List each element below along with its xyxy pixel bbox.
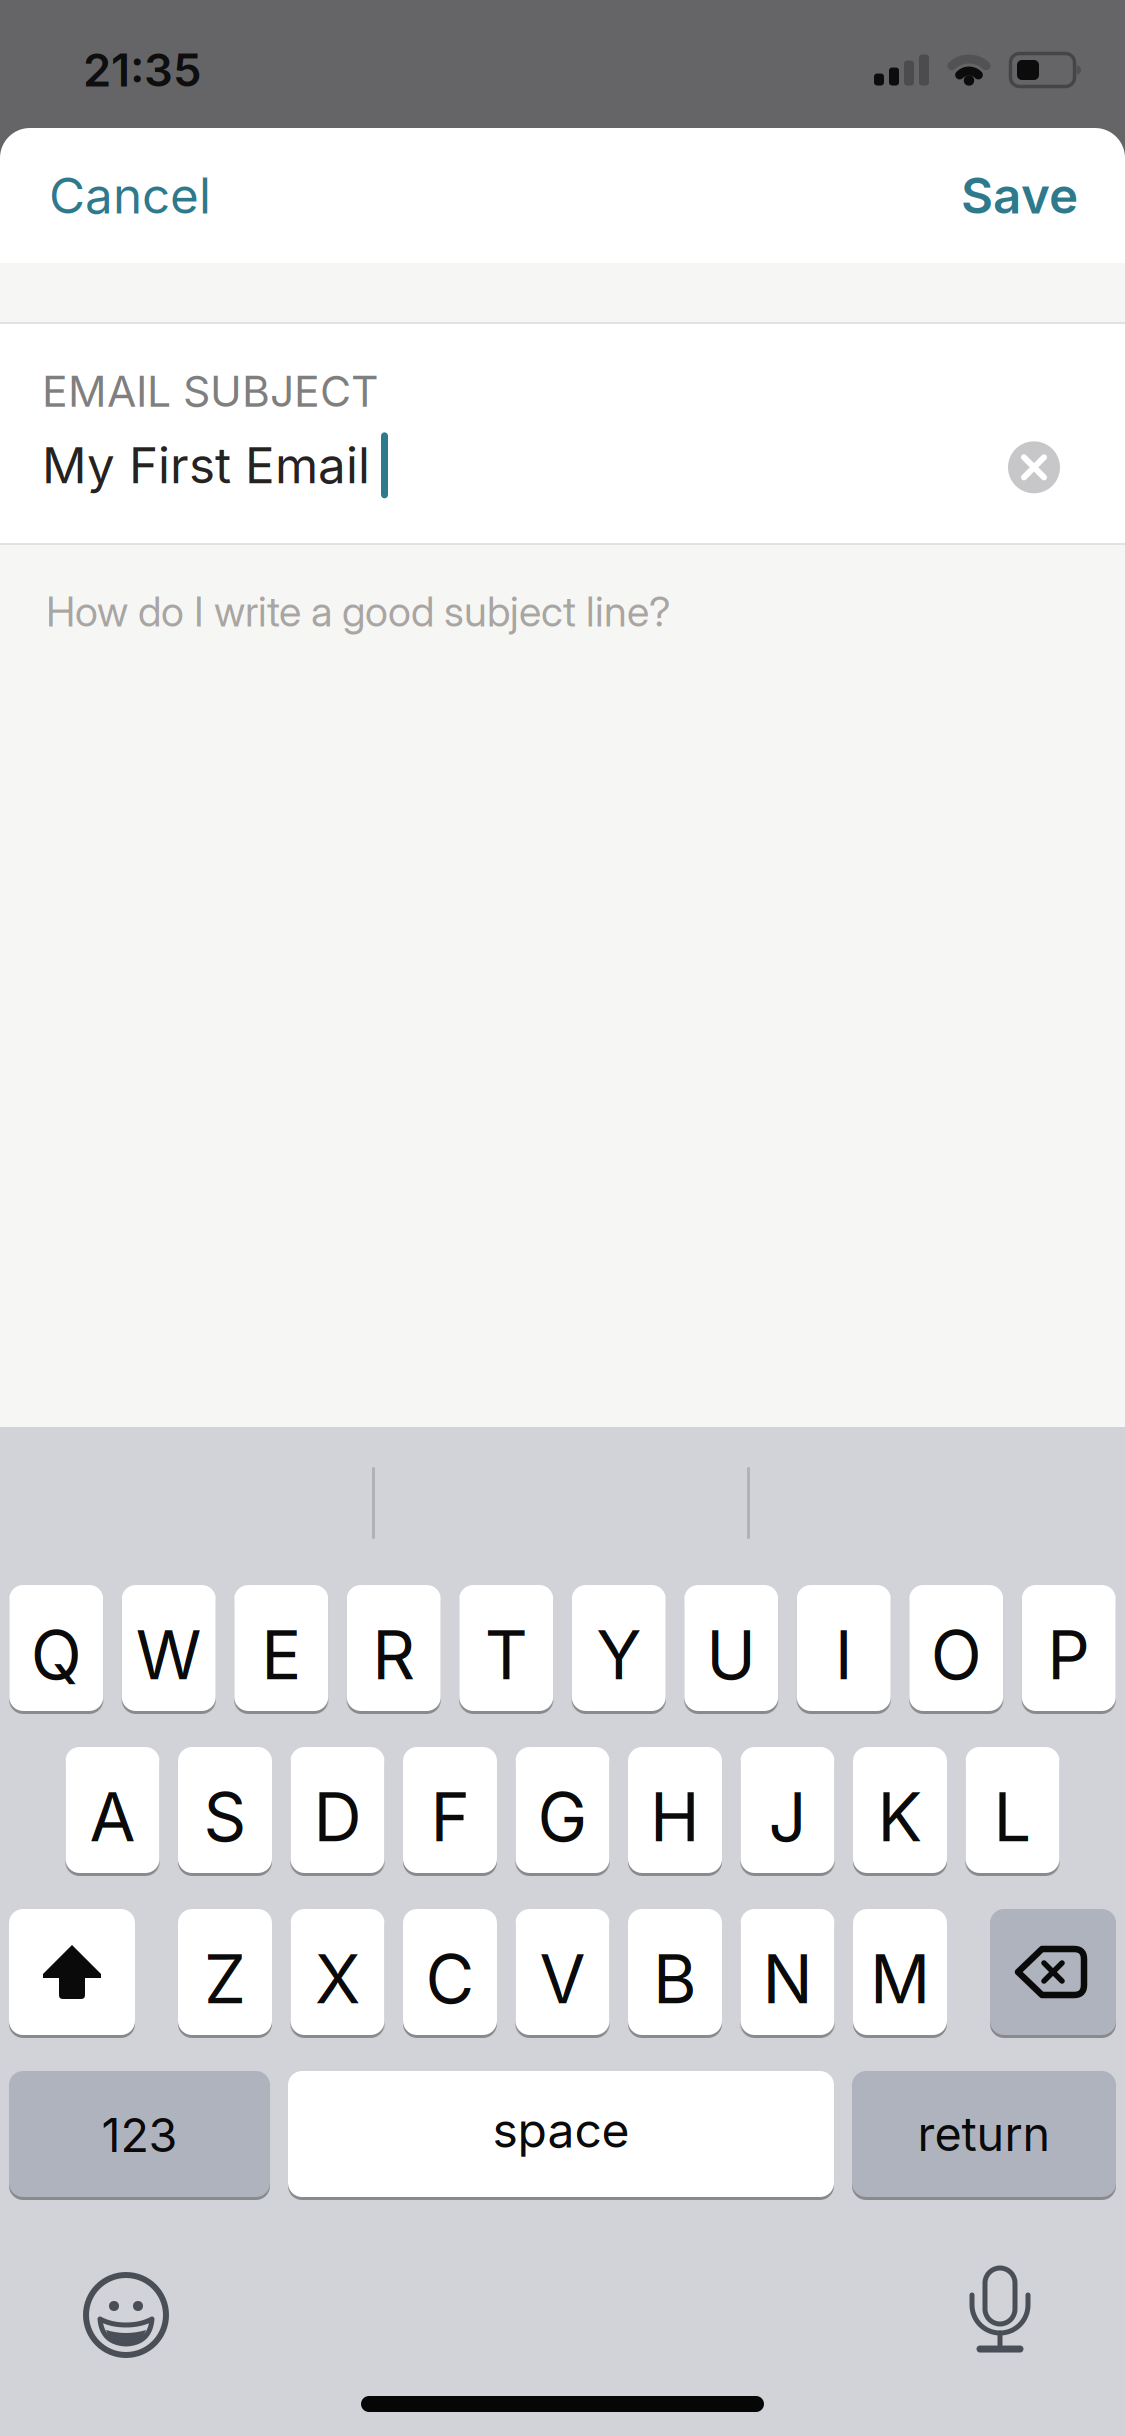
button[interactable]: Cancel xyxy=(49,166,211,225)
staticText: V xyxy=(539,1940,585,2018)
button[interactable]: space xyxy=(288,2071,834,2197)
button[interactable]: L xyxy=(965,1747,1059,1873)
button[interactable]: 123 xyxy=(9,2071,270,2197)
staticText: F xyxy=(430,1778,469,1856)
staticText: L xyxy=(993,1778,1031,1856)
button[interactable]: F xyxy=(403,1747,497,1873)
staticText: space xyxy=(492,2102,629,2158)
button[interactable]: U xyxy=(684,1585,778,1711)
button[interactable]: Y xyxy=(572,1585,666,1711)
staticText: O xyxy=(931,1616,982,1694)
staticText: Cancel xyxy=(49,166,211,225)
staticText: EMAIL SUBJECT xyxy=(42,366,379,416)
staticText: X xyxy=(315,1940,360,2018)
staticText: A xyxy=(89,1778,135,1856)
staticText: U xyxy=(706,1616,756,1694)
staticText: P xyxy=(1047,1616,1090,1694)
button[interactable]: P xyxy=(1022,1585,1116,1711)
button[interactable]: S xyxy=(178,1747,272,1873)
staticText: return xyxy=(917,2106,1050,2162)
button[interactable]: Clear text xyxy=(1008,441,1060,493)
button[interactable]: K xyxy=(853,1747,947,1873)
staticText: H xyxy=(650,1778,700,1856)
staticText: I xyxy=(835,1616,853,1694)
staticText: N xyxy=(762,1940,812,2018)
staticText: B xyxy=(653,1940,697,2018)
button[interactable]: J xyxy=(740,1747,834,1873)
staticText: Z xyxy=(204,1940,246,2018)
staticText: 21:35 xyxy=(83,43,202,97)
button[interactable]: Q xyxy=(9,1585,103,1711)
staticText: Save xyxy=(961,166,1078,225)
staticText: R xyxy=(372,1616,415,1694)
staticText: How do I write a good subject line? xyxy=(46,587,671,636)
button[interactable]: D xyxy=(290,1747,384,1873)
button[interactable]: X xyxy=(290,1909,384,2035)
staticText: My First Email xyxy=(42,436,370,494)
button[interactable]: Shift xyxy=(9,1909,135,2035)
button[interactable]: C xyxy=(403,1909,497,2035)
button[interactable]: V xyxy=(515,1909,609,2035)
button[interactable]: G xyxy=(515,1747,609,1873)
button[interactable]: Dictation xyxy=(967,2267,1033,2363)
button[interactable]: B xyxy=(628,1909,722,2035)
staticText: J xyxy=(768,1778,806,1856)
button[interactable]: N xyxy=(740,1909,834,2035)
staticText: Y xyxy=(596,1616,641,1694)
button[interactable]: E xyxy=(234,1585,328,1711)
staticText: K xyxy=(877,1778,922,1856)
staticText: D xyxy=(313,1778,361,1856)
staticText: G xyxy=(537,1778,587,1856)
button[interactable]: return xyxy=(852,2071,1116,2197)
button[interactable]: H xyxy=(628,1747,722,1873)
button[interactable]: Z xyxy=(178,1909,272,2035)
button[interactable]: T xyxy=(459,1585,553,1711)
staticText: M xyxy=(870,1940,930,2018)
button[interactable]: W xyxy=(122,1585,216,1711)
staticText: W xyxy=(136,1616,202,1694)
staticText: C xyxy=(425,1940,474,2018)
staticText: 123 xyxy=(101,2107,177,2163)
button[interactable]: Save xyxy=(961,166,1078,225)
staticText: Q xyxy=(31,1616,82,1694)
button[interactable]: I xyxy=(797,1585,891,1711)
staticText: E xyxy=(261,1616,301,1694)
button[interactable]: Delete xyxy=(990,1909,1116,2035)
staticText: S xyxy=(203,1778,246,1856)
button[interactable]: A xyxy=(65,1747,159,1873)
button[interactable]: M xyxy=(853,1909,947,2035)
button[interactable]: O xyxy=(909,1585,1003,1711)
button[interactable]: R xyxy=(347,1585,441,1711)
button[interactable]: Emoji xyxy=(81,2270,171,2360)
staticText: T xyxy=(485,1616,528,1694)
